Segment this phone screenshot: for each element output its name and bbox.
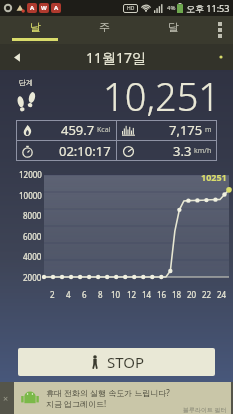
staticText: 22	[202, 289, 212, 300]
button[interactable]: 459.7	[21, 120, 111, 140]
staticText: 8000	[23, 210, 42, 221]
staticText: 4	[66, 289, 71, 300]
staticText: ×	[3, 392, 9, 404]
staticText: 20	[187, 289, 197, 300]
button[interactable]: More options	[207, 16, 233, 44]
staticText: Kcal	[97, 125, 111, 135]
staticText: 10251	[201, 171, 227, 183]
staticText: 18	[172, 289, 182, 300]
staticText: 12	[127, 289, 137, 300]
staticText: A	[30, 4, 35, 12]
button[interactable]: 주	[69, 16, 138, 44]
staticText: W	[41, 4, 47, 12]
button[interactable]: Close ad	[0, 392, 12, 404]
staticText: 블루라이트 필터	[183, 406, 227, 414]
staticText: 휴대 전화의 실행 속도가 느립니다?	[46, 387, 170, 398]
staticText: 날	[30, 20, 41, 34]
staticText: HD	[127, 5, 135, 12]
staticText: 24	[217, 289, 227, 300]
button[interactable]: STOP	[18, 348, 215, 376]
staticText: 12000	[19, 169, 42, 180]
staticText: 10	[111, 289, 121, 300]
button[interactable]: 3.3	[122, 141, 212, 161]
button[interactable]: Next day	[209, 44, 233, 70]
staticText: 지금 업그레이드!	[46, 398, 107, 409]
staticText: 4%	[167, 4, 176, 12]
button[interactable]: 7,175	[122, 120, 212, 140]
staticText: 8	[98, 289, 103, 300]
staticText: 459.7	[61, 121, 95, 139]
staticText: 주	[99, 20, 110, 34]
staticText: 단계	[19, 78, 33, 87]
staticText: 10000	[19, 190, 42, 201]
staticText: m	[205, 125, 212, 135]
staticText: 오후 11:53	[186, 2, 230, 14]
staticText: 2000	[23, 272, 42, 283]
staticText: 4000	[23, 251, 42, 262]
staticText: 7,175	[169, 121, 203, 139]
staticText: STOP	[107, 352, 145, 372]
staticText: 11월17일	[86, 48, 147, 67]
staticText: 14	[142, 289, 152, 300]
button[interactable]: Previous day	[0, 44, 34, 70]
staticText: 6000	[23, 231, 42, 242]
staticText: 10,251	[103, 70, 221, 118]
staticText: km/h	[194, 146, 212, 156]
button[interactable]: 날	[0, 16, 69, 44]
staticText: 2	[50, 289, 55, 300]
button[interactable]: 02:10:17	[21, 141, 111, 161]
staticText: 02:10:17	[59, 142, 111, 160]
staticText: 6	[82, 289, 87, 300]
button[interactable]: 휴대 전화의 실행 속도가 느립니다?	[14, 382, 231, 414]
staticText: 달	[168, 20, 179, 34]
staticText: 3.3	[173, 142, 192, 160]
button[interactable]: 달	[138, 16, 207, 44]
staticText: A	[54, 4, 59, 12]
staticText: 16	[157, 289, 167, 300]
